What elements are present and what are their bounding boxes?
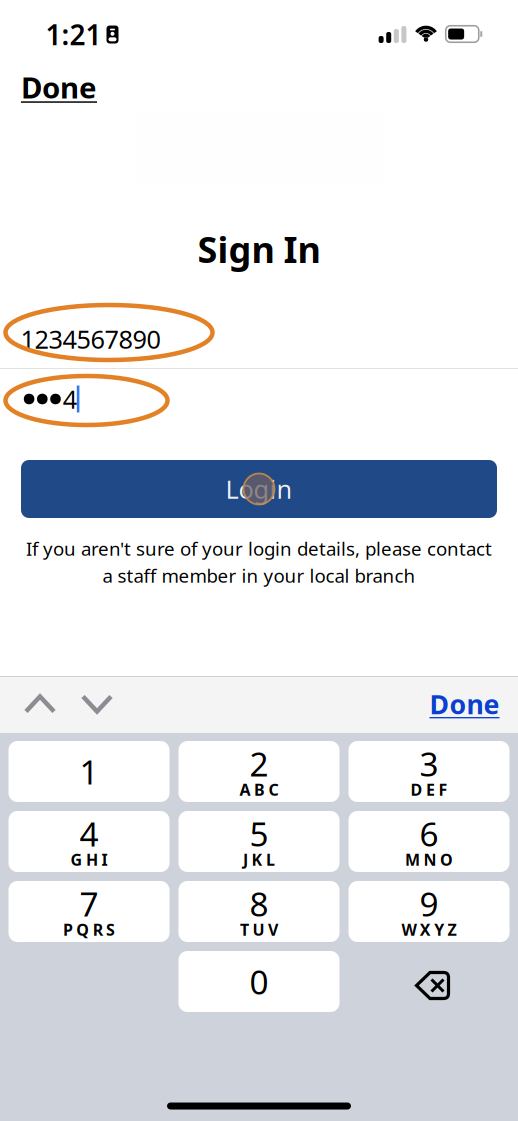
staticText: C (268, 779, 278, 800)
staticText: I (101, 849, 107, 870)
staticText: 9 (419, 881, 438, 926)
button[interactable]: Previous field (12, 680, 68, 728)
staticText: 6 (419, 811, 438, 856)
button[interactable]: 8 (178, 881, 339, 942)
staticText: 0 (249, 959, 268, 1004)
staticText: S (106, 919, 115, 940)
staticText: V (268, 919, 278, 940)
button[interactable]: Done (414, 681, 514, 727)
button[interactable]: Delete (352, 955, 513, 1016)
staticText: Done (429, 686, 499, 722)
staticText: a staff member in your local branch (102, 563, 415, 588)
staticText: O (440, 849, 453, 870)
button[interactable]: 5 (178, 811, 339, 872)
staticText: 1:21 (45, 16, 101, 53)
staticText: Z (448, 919, 457, 940)
staticText: G (71, 849, 83, 870)
button[interactable]: Done (21, 67, 109, 107)
staticText: Done (21, 67, 97, 106)
staticText: N (423, 849, 436, 870)
button[interactable]: Login (21, 460, 497, 518)
staticText: 1234567890 (21, 322, 161, 356)
button[interactable]: 6 (348, 811, 509, 872)
staticText: 5 (249, 811, 268, 856)
staticText: 1 (79, 749, 98, 794)
staticText: B (254, 779, 265, 800)
staticText: 4 (79, 811, 98, 856)
staticText: M (405, 849, 420, 870)
staticText: K (251, 849, 262, 870)
button[interactable]: 4 (8, 811, 169, 872)
staticText: E (426, 779, 435, 800)
staticText: L (266, 849, 275, 870)
staticText: 7 (79, 881, 98, 926)
button[interactable]: 1 (8, 741, 169, 802)
staticText: If you aren't sure of your login details… (26, 536, 492, 561)
staticText: 8 (249, 881, 268, 926)
staticText: Sign In (197, 225, 320, 273)
staticText: P (63, 919, 73, 940)
button[interactable]: 9 (348, 881, 509, 942)
staticText: F (438, 779, 447, 800)
staticText: Q (76, 919, 89, 940)
staticText: Login (225, 472, 292, 506)
button[interactable]: 0 (178, 951, 339, 1012)
staticText: J (243, 849, 248, 870)
staticText: R (93, 919, 103, 940)
button[interactable]: 7 (8, 881, 169, 942)
staticText: T (240, 919, 249, 940)
staticText: U (252, 919, 264, 940)
staticText: W (401, 919, 416, 940)
button[interactable]: 2 (178, 741, 339, 802)
staticText: X (420, 919, 431, 940)
staticText: D (411, 779, 423, 800)
button[interactable]: Next field (69, 680, 125, 728)
staticText: 3 (419, 741, 438, 786)
button[interactable]: 3 (348, 741, 509, 802)
staticText: Y (434, 919, 444, 940)
staticText: 4 (63, 382, 77, 416)
staticText: 2 (249, 741, 268, 786)
staticText: A (240, 779, 251, 800)
staticText: H (86, 849, 98, 870)
